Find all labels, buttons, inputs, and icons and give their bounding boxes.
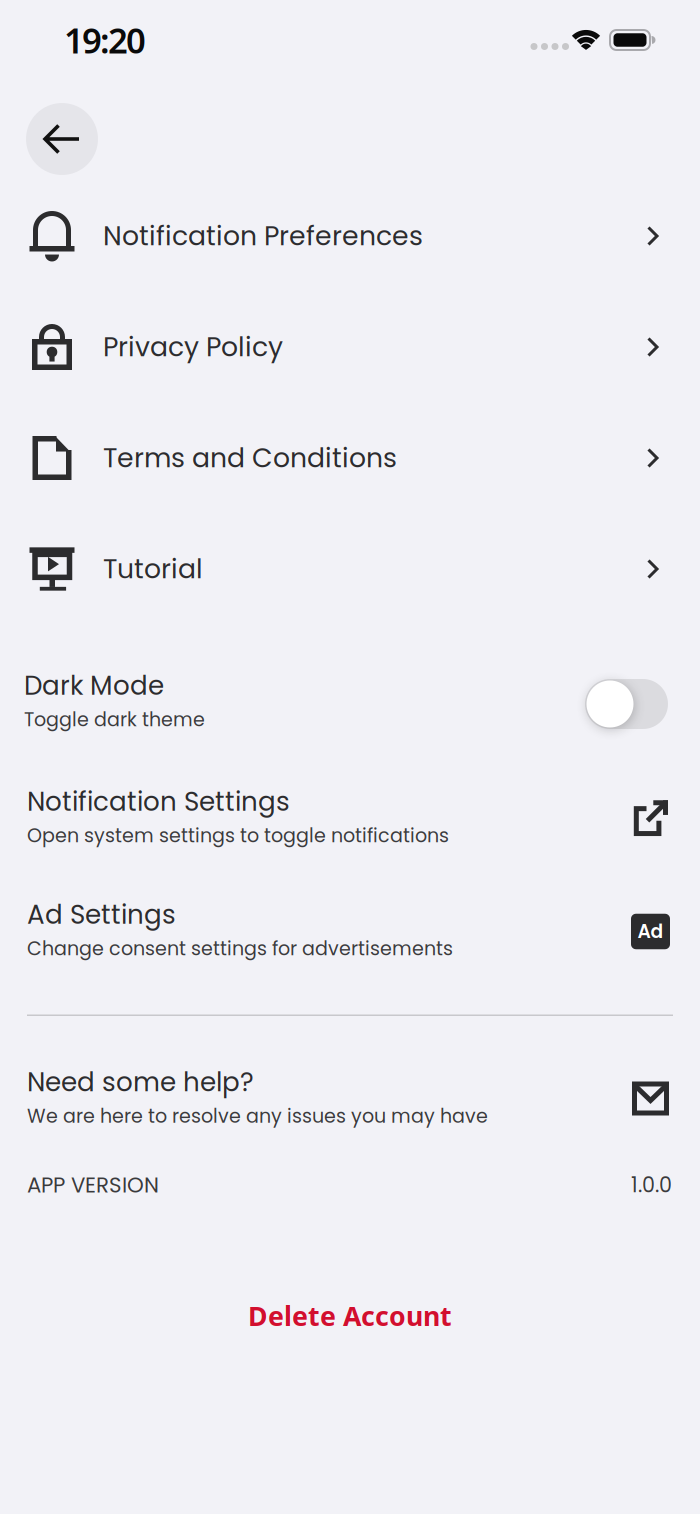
staticText: Privacy Policy: [103, 328, 283, 366]
staticText: Open system settings to toggle notificat…: [27, 822, 449, 849]
button[interactable]: Notification Settings: [0, 782, 700, 850]
staticText: Toggle dark theme: [24, 706, 205, 733]
staticText: Tutorial: [103, 550, 203, 588]
staticText: Ad Settings: [27, 896, 176, 933]
button[interactable]: Need some help?: [0, 1063, 700, 1131]
button[interactable]: Tutorial: [0, 513, 700, 624]
staticText: We are here to resolve any issues you ma…: [27, 1103, 488, 1129]
button[interactable]: Notification Preferences: [0, 180, 700, 291]
staticText: Change consent settings for advertisemen…: [27, 935, 453, 962]
staticText: Notification Preferences: [103, 217, 423, 255]
staticText: 1.0.0: [631, 1170, 672, 1199]
button[interactable]: Back: [26, 103, 98, 175]
staticText: APP VERSION: [27, 1170, 159, 1200]
button[interactable]: Privacy Policy: [0, 291, 700, 402]
staticText: Delete Account: [248, 1298, 452, 1333]
staticText: Dark Mode: [24, 667, 164, 704]
staticText: 19:20: [64, 17, 146, 63]
button[interactable]: Delete Account: [248, 1298, 452, 1333]
staticText: Need some help?: [27, 1064, 254, 1100]
staticText: Ad: [637, 918, 663, 944]
staticText: Terms and Conditions: [103, 439, 397, 477]
staticText: Notification Settings: [27, 783, 290, 820]
button[interactable]: Dark Mode: [585, 679, 668, 729]
button[interactable]: Ad Settings: [0, 895, 700, 963]
button[interactable]: Terms and Conditions: [0, 402, 700, 513]
